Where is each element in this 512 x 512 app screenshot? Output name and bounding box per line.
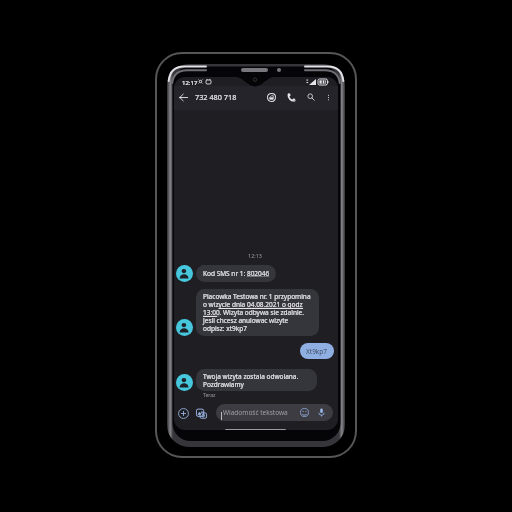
staticText: Placowka Testowa nr. 1 przypomina o wizy… [203,292,311,333]
staticText: 732 480 718 [195,92,237,102]
button[interactable]: Call [282,88,300,106]
staticText: 12:17 [182,79,198,87]
button[interactable]: Video call [262,88,280,106]
staticText: Teraz [203,392,216,399]
staticText: 12:13 [174,252,337,259]
button[interactable]: Twoja wizyta zostala odwolana. Pozdrawia… [196,369,317,391]
button[interactable]: Gallery [193,405,210,422]
staticText: Kod SMS nr 1: 802046 [203,269,270,278]
staticText: Xt9kp7 [306,347,328,356]
button[interactable]: Search [302,88,320,106]
button[interactable]: Voice message [315,406,328,419]
button[interactable]: Back [174,88,192,106]
button[interactable]: Emoji [298,406,311,419]
button[interactable]: More options [319,88,337,106]
button[interactable]: Wiadomość tekstowa [216,404,333,421]
button[interactable]: Add attachment [175,405,192,422]
staticText: Wiadomość tekstowa [223,408,288,417]
staticText: Twoja wizyta zostala odwolana. Pozdrawia… [203,372,299,389]
button[interactable]: Placowka Testowa nr. 1 przypomina o wizy… [196,289,319,336]
button[interactable]: Kod SMS nr 1: 802046 [196,265,276,282]
button[interactable]: Xt9kp7 [300,343,334,359]
